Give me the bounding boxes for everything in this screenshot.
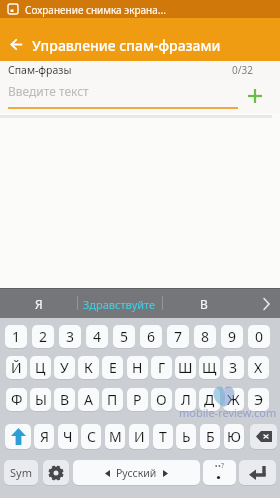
button[interactable]: 1 (5, 325, 27, 348)
staticText: 3 (66, 327, 75, 346)
staticText: У (60, 358, 69, 377)
staticText: Управление спам-фразами (32, 36, 221, 55)
staticText: О (156, 390, 167, 409)
staticText: Б (206, 427, 215, 446)
staticText: 7 (174, 327, 183, 346)
staticText: Спам-фразы (8, 63, 72, 77)
staticText: Ю (227, 427, 241, 446)
button[interactable]: 0 (248, 325, 270, 348)
staticText: 9 (228, 327, 237, 346)
button[interactable] (250, 424, 277, 449)
button[interactable]: В (54, 388, 75, 411)
staticText: Т (159, 427, 167, 446)
button[interactable]: Ю (224, 424, 244, 449)
staticText: Я (40, 427, 49, 446)
button[interactable]: Ч (58, 424, 78, 449)
staticText: Ф (11, 390, 23, 409)
button[interactable]: Е (102, 356, 123, 379)
button[interactable]: Ы (30, 388, 51, 411)
button[interactable]: Щ (199, 356, 220, 379)
button[interactable] (43, 460, 69, 485)
staticText: Д (204, 390, 215, 409)
button[interactable]: К (78, 356, 99, 379)
staticText: Sym (10, 465, 32, 480)
button[interactable]: Р (127, 388, 148, 411)
button[interactable]: Русский (73, 460, 200, 485)
button[interactable]: Б (200, 424, 220, 449)
button[interactable]: Я (34, 424, 54, 449)
staticText: Введите текст (8, 83, 89, 99)
button[interactable]: 7 (167, 325, 189, 348)
button[interactable]: Ш (175, 356, 196, 379)
button[interactable]: М (105, 424, 125, 449)
staticText: Щ (202, 358, 217, 377)
button[interactable]: Ь (176, 424, 196, 449)
staticText: Ы (35, 390, 47, 409)
button[interactable]: Э (248, 388, 269, 411)
button[interactable] (0, 18, 280, 61)
button[interactable]: Г (151, 356, 172, 379)
button[interactable]: А (78, 388, 99, 411)
staticText: В (200, 296, 208, 312)
button[interactable]: Д (199, 388, 220, 411)
button[interactable]: Н (127, 356, 148, 379)
button[interactable] (247, 88, 263, 104)
button[interactable]: Т (153, 424, 173, 449)
staticText: Сохранение снимка экрана... (25, 3, 166, 17)
staticText: С (87, 427, 96, 446)
staticText: 0/32 (232, 63, 253, 77)
staticText: 2 (39, 327, 48, 346)
button[interactable]: Я (0, 290, 77, 318)
staticText: А (84, 390, 93, 409)
button[interactable]: Й (6, 356, 27, 379)
staticText: 0 (255, 327, 264, 346)
staticText: Г (158, 358, 166, 377)
button[interactable]: 2 (32, 325, 54, 348)
staticText: Ь (182, 427, 191, 446)
staticText: П (107, 390, 118, 409)
staticText: mobile-review.com (179, 405, 277, 420)
button[interactable] (5, 424, 31, 449)
staticText: 6 (147, 327, 156, 346)
staticText: 8 (201, 327, 210, 346)
staticText: Й (11, 358, 22, 377)
button[interactable]: 5 (113, 325, 135, 348)
button[interactable]: 3 (59, 325, 81, 348)
button[interactable]: Х (248, 356, 269, 379)
staticText: Русский (116, 466, 157, 480)
button[interactable] (239, 460, 276, 485)
button[interactable]: 6 (140, 325, 162, 348)
staticText: Ш (178, 358, 193, 377)
button[interactable]: П (102, 388, 123, 411)
button[interactable]: Sym (4, 460, 38, 485)
staticText: М (109, 427, 122, 446)
staticText: Ч (63, 427, 73, 446)
button[interactable]: О (151, 388, 172, 411)
button[interactable]: З (223, 356, 244, 379)
staticText: Е (109, 358, 117, 377)
button[interactable]: 9 (221, 325, 243, 348)
button[interactable]: В (162, 290, 246, 318)
staticText: Н (132, 358, 143, 377)
staticText: Х (254, 358, 263, 377)
button[interactable] (262, 297, 271, 311)
staticText: ? (221, 461, 225, 471)
button[interactable]: С (81, 424, 101, 449)
button[interactable]: ? (203, 460, 236, 485)
button[interactable]: И (129, 424, 149, 449)
button[interactable]: 8 (194, 325, 216, 348)
staticText: Р (133, 390, 142, 409)
button[interactable]: Л (175, 388, 196, 411)
button[interactable]: Ц (30, 356, 51, 379)
button[interactable]: Здравствуйте (77, 290, 162, 318)
button[interactable] (0, 80, 280, 113)
staticText: З (229, 358, 238, 377)
button[interactable]: У (54, 356, 75, 379)
button[interactable]: Ж (223, 388, 244, 411)
staticText: Здравствуйте (83, 297, 156, 312)
button[interactable]: Ф (6, 388, 27, 411)
staticText: К (84, 358, 93, 377)
button[interactable]: 4 (86, 325, 108, 348)
staticText: 5 (120, 327, 129, 346)
staticText: Ц (35, 358, 46, 377)
